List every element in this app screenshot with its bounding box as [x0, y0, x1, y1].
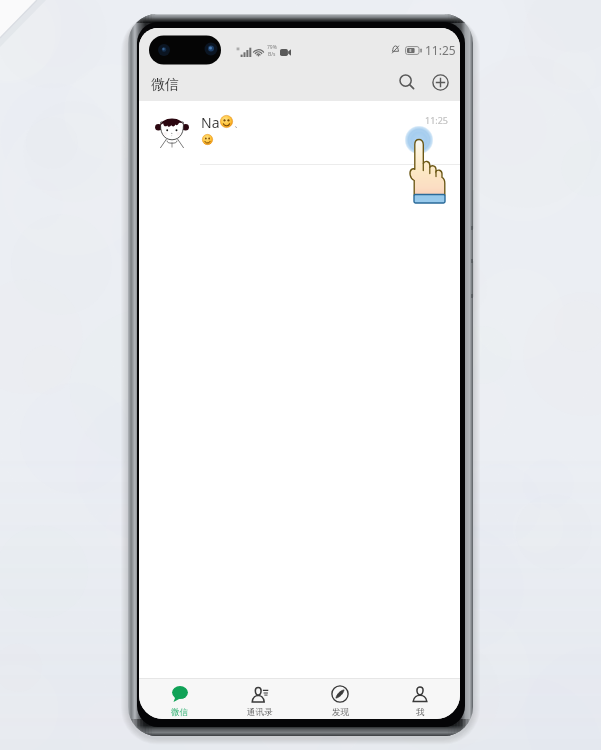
staticText: 、	[234, 118, 243, 129]
staticText: 微信	[171, 707, 188, 718]
button[interactable]: Search	[393, 68, 421, 96]
staticText: 79%	[267, 44, 277, 51]
button[interactable]: 通讯录	[220, 679, 300, 718]
staticText: 11:25	[425, 42, 456, 58]
button[interactable]: Na	[139, 101, 460, 165]
staticText: 发现	[332, 707, 349, 718]
button[interactable]: 微信	[139, 679, 220, 718]
staticText: 通讯录	[247, 707, 273, 718]
staticText: 微信	[151, 76, 179, 94]
staticText: B/s	[268, 51, 276, 58]
staticText: 我	[416, 707, 425, 718]
staticText: 11:25	[425, 114, 449, 126]
button[interactable]: 我	[380, 679, 460, 718]
staticText: Na	[201, 113, 220, 132]
button[interactable]: Add	[426, 68, 454, 96]
button[interactable]: 发现	[300, 679, 380, 718]
